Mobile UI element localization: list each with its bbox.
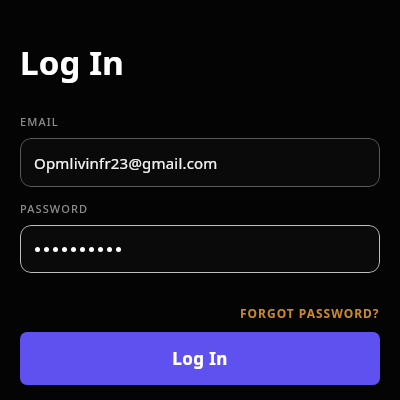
staticText: Log In	[172, 347, 228, 370]
staticText: Opmlivinfr23@gmail.com	[34, 153, 218, 173]
button[interactable]: Opmlivinfr23@gmail.com	[20, 138, 380, 187]
staticText: Log In	[20, 40, 124, 85]
button[interactable]	[20, 225, 380, 273]
staticText: EMAIL	[20, 114, 59, 129]
staticText: PASSWORD	[20, 201, 89, 216]
button[interactable]: Log In	[20, 332, 380, 385]
button[interactable]: FORGOT PASSWORD?	[240, 303, 380, 323]
staticText: FORGOT PASSWORD?	[240, 305, 380, 321]
